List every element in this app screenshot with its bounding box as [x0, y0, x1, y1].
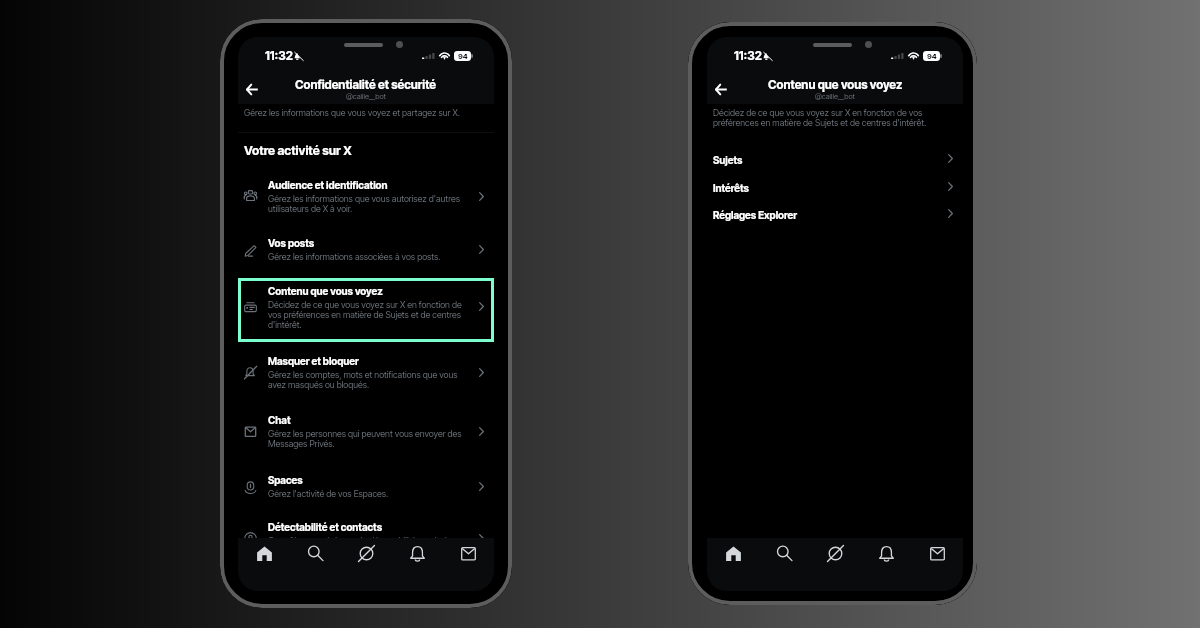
staticText: Votre activité sur X	[244, 143, 352, 158]
staticText: Contrôlez vos réglages de détectabilité …	[268, 535, 464, 556]
staticText: 11:32	[265, 48, 293, 63]
button[interactable]: Notifications	[871, 540, 901, 566]
button[interactable]: Sujets	[707, 147, 963, 171]
staticText: Audience et identification	[268, 179, 388, 191]
staticText: Contenu que vous voyez	[268, 285, 383, 297]
button[interactable]: Home	[718, 540, 748, 566]
staticText: Confidentialité et sécurité	[295, 77, 437, 91]
button[interactable]: Contenu que vous voyez	[238, 280, 494, 329]
button[interactable]: Intérêts	[707, 175, 963, 199]
button[interactable]: Réglages Explorer	[707, 202, 963, 226]
button[interactable]: Grok	[820, 540, 850, 566]
staticText: Gérez les informations que vous autorise…	[268, 193, 464, 214]
button[interactable]: Grok	[351, 540, 381, 566]
staticText: Gérez les comptes, mots et notifications…	[268, 369, 464, 390]
staticText: Gérez l'activité de vos Espaces.	[268, 488, 389, 499]
staticText: Contenu que vous voyez	[768, 77, 903, 91]
staticText: Détectabilité et contacts	[268, 521, 383, 533]
staticText: Masquer et bloquer	[268, 355, 359, 367]
staticText: 11:32	[734, 48, 762, 63]
staticText: Gérez les informations associées à vos p…	[268, 251, 441, 262]
staticText: @caille__bot	[815, 92, 855, 101]
staticText: @caille__bot	[346, 92, 386, 101]
staticText: 94	[927, 52, 937, 61]
button[interactable]	[238, 278, 494, 342]
staticText: Sujets	[713, 154, 743, 166]
button[interactable]: Masquer et bloquer	[238, 350, 494, 389]
staticText: 94	[458, 52, 468, 61]
staticText: Intérêts	[713, 182, 749, 194]
staticText: Chat	[268, 414, 291, 426]
button[interactable]: Notifications	[402, 540, 432, 566]
staticText: Décidez de ce que vous voyez sur X en fo…	[268, 299, 464, 330]
staticText: Gérez les informations que vous voyez et…	[244, 107, 460, 118]
button[interactable]: Search	[769, 540, 799, 566]
button[interactable]: Back	[241, 78, 263, 100]
button[interactable]: Chat	[238, 409, 494, 448]
button[interactable]: Messages	[453, 540, 483, 566]
button[interactable]: Search	[300, 540, 330, 566]
staticText: Vos posts	[268, 237, 315, 249]
button[interactable]: Back	[710, 78, 732, 100]
staticText: Gérez les personnes qui peuvent vous env…	[268, 428, 464, 449]
button[interactable]: Vos posts	[238, 232, 494, 261]
staticText: Réglages Explorer	[713, 209, 798, 221]
staticText: Spaces	[268, 474, 303, 486]
staticText: Décidez de ce que vous voyez sur X en fo…	[713, 107, 929, 128]
button[interactable]: Messages	[922, 540, 952, 566]
button[interactable]: Spaces	[238, 469, 494, 498]
button[interactable]: Home	[249, 540, 279, 566]
button[interactable]: Audience et identification	[238, 174, 494, 213]
button[interactable]: Détectabilité et contacts	[238, 516, 494, 555]
